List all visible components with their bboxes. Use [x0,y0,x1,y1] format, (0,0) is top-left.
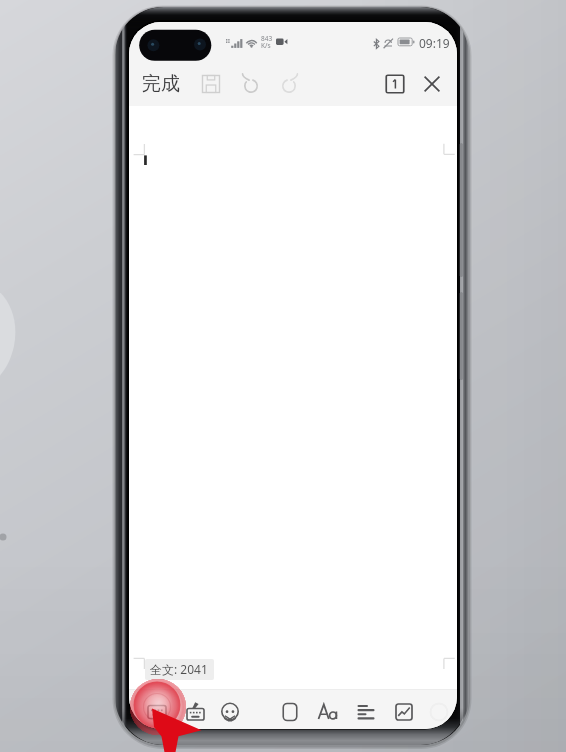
staticText: K/s [261,41,271,50]
button[interactable]: Font [311,695,345,729]
button[interactable]: Handwriting [179,695,213,729]
button[interactable]: Page style [273,695,307,729]
button[interactable]: Close [417,69,447,99]
button[interactable]: Save [196,69,226,99]
staticText: 完成 [142,72,180,96]
button[interactable]: Redo [272,67,306,101]
button[interactable]: 全文: 2041 [145,659,214,680]
staticText: 09:19 [419,35,450,51]
button[interactable]: Insert image [387,695,421,729]
button[interactable]: Keyboard [140,695,174,729]
button[interactable]: Undo [234,67,268,101]
staticText: 843 [261,34,273,43]
staticText: 全文: 2041 [150,661,208,677]
button[interactable]: 完成 [136,66,186,102]
button[interactable]: More [422,695,456,729]
button[interactable]: Page count [380,69,410,99]
button[interactable]: Emoji [213,695,247,729]
button[interactable]: Align [349,695,383,729]
